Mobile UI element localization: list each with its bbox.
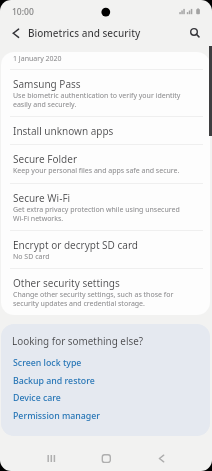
- staticText: No SD card: [13, 252, 50, 262]
- staticText: Keep your personal files and apps safe a…: [13, 166, 180, 176]
- button[interactable]: Home: [88, 441, 124, 471]
- button[interactable]: Encrypt or decrypt SD card: [1, 230, 210, 267]
- button[interactable]: Navigate up: [2, 22, 28, 48]
- staticText: 1 January 2020: [13, 54, 62, 64]
- staticText: Screen lock type: [13, 357, 82, 369]
- staticText: Install unknown apps: [13, 124, 114, 138]
- staticText: Other security settings: [13, 276, 120, 290]
- staticText: 10:00: [12, 6, 34, 18]
- button[interactable]: Samsung Pass: [1, 69, 210, 116]
- staticText: Use biometric authentication to verify y…: [13, 91, 181, 109]
- staticText: Secure Wi-Fi: [13, 191, 71, 205]
- button[interactable]: Secure Wi-Fi: [1, 183, 210, 230]
- button[interactable]: Search: [182, 22, 208, 48]
- staticText: Backup and restore: [13, 375, 95, 387]
- staticText: Get extra privacy protection while using…: [13, 205, 180, 223]
- button[interactable]: Backup and restore: [1, 373, 210, 391]
- staticText: Device care: [13, 392, 61, 404]
- button[interactable]: Secure Folder: [1, 144, 210, 183]
- staticText: Encrypt or decrypt SD card: [13, 238, 138, 252]
- button[interactable]: Back: [143, 441, 179, 471]
- button[interactable]: Permission manager: [1, 408, 210, 426]
- staticText: Secure Folder: [13, 152, 78, 166]
- button[interactable]: Screen lock type: [1, 355, 210, 373]
- staticText: Biometrics and security: [28, 26, 141, 40]
- staticText: Looking for something else?: [12, 334, 144, 347]
- button[interactable]: Recents: [33, 441, 69, 471]
- button[interactable]: Device care: [1, 390, 210, 408]
- staticText: Change other security settings, such as …: [13, 290, 174, 308]
- staticText: Permission manager: [13, 410, 101, 422]
- staticText: Samsung Pass: [13, 77, 81, 91]
- button[interactable]: Other security settings: [1, 268, 210, 315]
- button[interactable]: Install unknown apps: [1, 116, 210, 144]
